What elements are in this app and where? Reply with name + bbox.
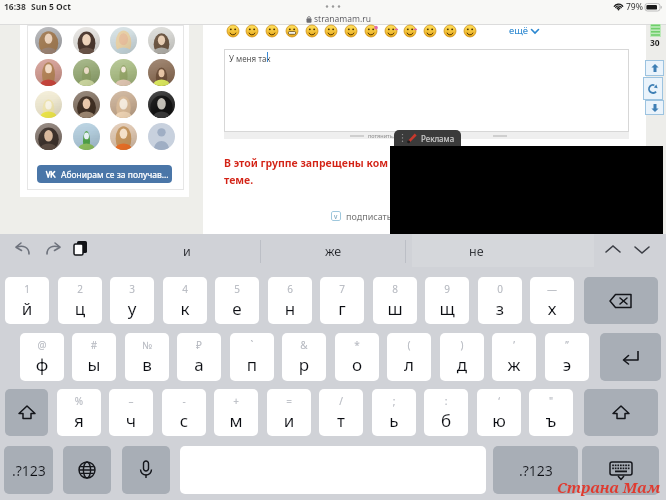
button[interactable]: Subscriber avatar xyxy=(73,123,100,150)
button[interactable]: 0 xyxy=(478,277,522,324)
button[interactable]: ) xyxy=(440,333,484,381)
staticText: же xyxy=(325,243,342,260)
button[interactable]: Subscriber avatar xyxy=(148,91,175,118)
button[interactable]: Hide keyboard xyxy=(582,446,659,495)
button[interactable]: 9 xyxy=(425,277,469,324)
staticText: ( xyxy=(387,338,431,352)
button[interactable]: Refresh xyxy=(643,77,663,100)
staticText: х xyxy=(530,297,574,320)
button[interactable]: 5 xyxy=(215,277,259,324)
staticText: stranamam.ru xyxy=(314,13,371,25)
button[interactable]: ’ xyxy=(492,333,536,381)
button[interactable]: / xyxy=(319,389,363,436)
button[interactable]: 1 xyxy=(5,277,49,324)
button[interactable]: Undo xyxy=(12,240,34,262)
button[interactable]: : xyxy=(424,389,468,436)
button[interactable]: ‘ xyxy=(477,389,521,436)
button[interactable]: Subscriber avatar xyxy=(73,59,100,86)
button[interactable]: v xyxy=(331,209,402,222)
staticText: з xyxy=(478,297,522,320)
button[interactable]: Subscriber avatar xyxy=(73,91,100,118)
staticText: ч xyxy=(109,409,153,432)
button[interactable]: Resize field xyxy=(224,132,629,139)
button[interactable]: ( xyxy=(387,333,431,381)
button[interactable]: Subscriber avatar xyxy=(148,123,175,150)
button[interactable]: 4 xyxy=(163,277,207,324)
button[interactable]: Switch keyboard xyxy=(63,446,111,494)
staticText: .?123 xyxy=(12,461,46,480)
button[interactable]: Next xyxy=(633,243,651,257)
button[interactable]: ” xyxy=(545,333,589,381)
button[interactable]: Shift xyxy=(5,389,48,436)
button[interactable]: - xyxy=(162,389,206,436)
staticText: 30 xyxy=(650,37,660,49)
button[interactable]: № xyxy=(125,333,169,381)
button[interactable]: Subscriber avatar xyxy=(110,123,137,150)
button[interactable]: Абонирам се за получав... xyxy=(37,165,172,183)
button[interactable]: У меня так xyxy=(224,49,629,132)
staticText: п xyxy=(230,353,274,376)
staticText: 2 xyxy=(58,282,102,296)
button[interactable]: Subscriber avatar xyxy=(35,59,62,86)
button[interactable]: Shift xyxy=(584,389,658,436)
button[interactable]: ещё xyxy=(509,24,539,37)
button[interactable]: ` xyxy=(230,333,274,381)
staticText: .?123 xyxy=(519,461,553,480)
button[interactable]: 3 xyxy=(110,277,154,324)
staticText: р xyxy=(282,353,326,376)
staticText: ф xyxy=(20,353,64,376)
button[interactable]: Subscriber avatar xyxy=(148,27,175,54)
staticText: Абонирам се за получав... xyxy=(61,169,169,181)
staticText: не xyxy=(469,243,484,260)
button[interactable]: Subscriber avatar xyxy=(35,91,62,118)
button[interactable]: ₽ xyxy=(177,333,221,381)
button[interactable]: — xyxy=(530,277,574,324)
button[interactable]: Dictation xyxy=(122,446,170,494)
staticText: — xyxy=(530,282,574,296)
button[interactable]: * xyxy=(335,333,379,381)
button[interactable]: 2 xyxy=(58,277,102,324)
button[interactable]: Numbers xyxy=(493,446,578,494)
button[interactable]: % xyxy=(57,389,101,436)
staticText: ц xyxy=(58,297,102,320)
button[interactable]: @ xyxy=(20,333,64,381)
staticText: @ xyxy=(20,338,64,352)
button[interactable]: + xyxy=(214,389,258,436)
button[interactable]: = xyxy=(267,389,311,436)
button[interactable]: & xyxy=(282,333,326,381)
button[interactable]: Advertisement xyxy=(394,130,461,146)
button[interactable]: Previous xyxy=(604,243,622,257)
staticText: ‘ xyxy=(477,394,521,408)
staticText: ; xyxy=(372,394,416,408)
button[interactable]: – xyxy=(109,389,153,436)
button[interactable]: Numbers xyxy=(4,446,53,494)
button[interactable]: Subscriber avatar xyxy=(35,27,62,54)
button[interactable]: Subscriber avatar xyxy=(110,59,137,86)
staticText: + xyxy=(214,394,258,408)
button[interactable]: Subscriber avatar xyxy=(110,27,137,54)
button[interactable]: 7 xyxy=(320,277,364,324)
button[interactable]: Paste xyxy=(73,240,91,258)
button[interactable]: Subscriber avatar xyxy=(35,123,62,150)
button[interactable]: Subscriber avatar xyxy=(110,91,137,118)
button[interactable]: " xyxy=(529,389,573,436)
button[interactable]: Scroll up xyxy=(645,60,664,76)
staticText: # xyxy=(72,338,116,352)
button[interactable]: Redo xyxy=(42,240,64,262)
staticText: л xyxy=(387,353,431,376)
staticText: : xyxy=(424,394,468,408)
staticText: ю xyxy=(477,409,521,432)
button[interactable]: Subscriber avatar xyxy=(73,27,100,54)
button[interactable]: Return xyxy=(600,333,661,381)
button[interactable]: 6 xyxy=(268,277,312,324)
button[interactable]: # xyxy=(72,333,116,381)
button[interactable]: Backspace xyxy=(584,277,658,324)
button[interactable]: 8 xyxy=(373,277,417,324)
button[interactable]: ; xyxy=(372,389,416,436)
button[interactable]: Scroll down xyxy=(645,100,664,115)
button[interactable]: Subscriber avatar xyxy=(148,59,175,86)
staticText: 5 xyxy=(215,282,259,296)
staticText: & xyxy=(282,338,326,352)
staticText: 79% xyxy=(626,1,643,13)
